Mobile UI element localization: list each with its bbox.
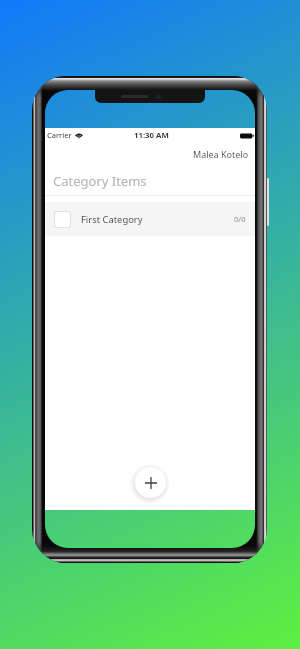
staticText: 11:30 AM [134, 130, 169, 141]
staticText: Malea Kotelo [193, 148, 249, 160]
staticText: Carrier [47, 130, 72, 140]
staticText: First Category [81, 213, 143, 226]
staticText: 0/0 [234, 214, 246, 224]
staticText: Category Items [53, 172, 147, 190]
button[interactable]: First Category [45, 202, 255, 236]
button[interactable]: Add [135, 467, 166, 498]
